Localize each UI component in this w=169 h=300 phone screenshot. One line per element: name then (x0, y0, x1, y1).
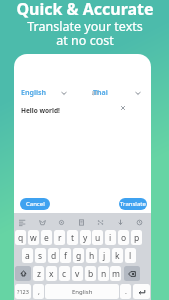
button[interactable]: Clear text (119, 104, 127, 112)
button[interactable]: Keyboard option 2 (37, 217, 47, 227)
staticText: Translate (120, 200, 146, 208)
button[interactable]: Keyboard option 1 (17, 217, 27, 227)
button[interactable]: c (59, 266, 70, 281)
staticText: r (58, 232, 62, 244)
button[interactable]: Keyboard option 5 (95, 217, 105, 227)
button[interactable]: Swap languages (90, 88, 100, 98)
staticText: v (75, 268, 80, 280)
staticText: Thai (93, 88, 108, 98)
button[interactable]: Keyboard option 7 (134, 217, 144, 227)
staticText: e (44, 232, 49, 244)
staticText: Cancel (26, 200, 45, 208)
staticText: p (134, 232, 140, 244)
button[interactable]: y (80, 230, 91, 245)
button[interactable]: j (99, 248, 110, 263)
staticText: q (18, 232, 24, 244)
staticText: k (115, 250, 120, 262)
staticText: Quick & Accurate (16, 0, 154, 20)
button[interactable]: , (33, 284, 44, 299)
button[interactable]: d (48, 248, 59, 263)
button[interactable]: Thai (90, 87, 111, 99)
button[interactable]: English (18, 87, 50, 99)
staticText: y (83, 232, 88, 244)
staticText: w (30, 232, 37, 244)
button[interactable]: v (72, 266, 83, 281)
button[interactable]: b (85, 266, 96, 281)
button[interactable]: q (15, 230, 26, 245)
button[interactable]: z (33, 266, 44, 281)
button[interactable]: x (46, 266, 57, 281)
button[interactable]: Translate (119, 198, 147, 210)
staticText: , (38, 287, 40, 297)
staticText: x (49, 268, 54, 280)
staticText: Hello world! (21, 106, 60, 115)
button[interactable]: t (67, 230, 78, 245)
staticText: i (109, 232, 112, 244)
button[interactable]: w (28, 230, 39, 245)
button[interactable]: Keyboard option 3 (56, 217, 66, 227)
staticText: c (62, 268, 67, 280)
button[interactable]: Shift (15, 266, 31, 281)
staticText: ?123 (17, 288, 29, 295)
button[interactable]: English (45, 284, 119, 299)
button[interactable]: Backspace (124, 266, 140, 281)
staticText: t (71, 232, 75, 244)
button[interactable]: m (110, 266, 121, 281)
staticText: g (76, 250, 82, 262)
staticText: m (112, 268, 120, 280)
button[interactable]: k (112, 248, 123, 263)
button[interactable]: p (131, 230, 142, 245)
button[interactable]: Choose source language (59, 88, 69, 98)
staticText: l (129, 250, 132, 262)
button[interactable]: h (86, 248, 97, 263)
button[interactable]: . (120, 284, 131, 299)
button[interactable]: a (22, 248, 33, 263)
button[interactable]: o (118, 230, 129, 245)
button[interactable]: Keyboard option 4 (76, 217, 86, 227)
button[interactable]: g (73, 248, 84, 263)
staticText: u (95, 232, 101, 244)
button[interactable]: u (92, 230, 103, 245)
button[interactable]: Enter (133, 284, 150, 299)
button[interactable]: i (105, 230, 116, 245)
button[interactable]: Cancel (20, 198, 50, 210)
button[interactable]: s (35, 248, 46, 263)
staticText: n (101, 268, 107, 280)
button[interactable]: l (125, 248, 136, 263)
staticText: o (121, 232, 127, 244)
staticText: Translate your texts at no cost (27, 18, 143, 49)
button[interactable]: ?123 (15, 284, 31, 299)
button[interactable]: Choose target language (133, 88, 143, 98)
staticText: f (64, 250, 67, 262)
staticText: . (125, 287, 127, 297)
staticText: English (72, 288, 93, 296)
button[interactable]: Keyboard option 6 (115, 217, 125, 227)
staticText: English (21, 88, 47, 98)
button[interactable]: f (60, 248, 71, 263)
staticText: a (25, 250, 30, 262)
button[interactable]: n (98, 266, 109, 281)
button[interactable]: r (54, 230, 65, 245)
staticText: b (88, 268, 94, 280)
staticText: d (51, 250, 57, 262)
staticText: j (103, 250, 106, 262)
button[interactable]: e (41, 230, 52, 245)
staticText: h (89, 250, 95, 262)
staticText: s (38, 250, 43, 262)
staticText: z (37, 268, 41, 280)
